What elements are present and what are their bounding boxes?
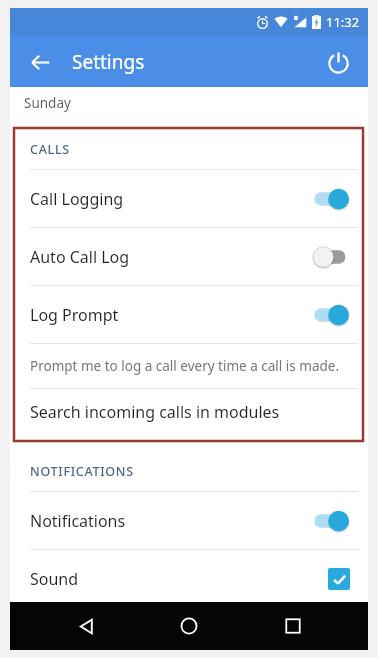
button[interactable]: Notifications xyxy=(10,492,368,549)
button[interactable]: Home xyxy=(161,602,217,650)
staticText: NOTIFICATIONS xyxy=(30,463,134,480)
staticText: Log Prompt xyxy=(30,304,312,326)
staticText: Sunday xyxy=(24,94,71,112)
staticText: Auto Call Log xyxy=(30,246,312,268)
staticText: Notifications xyxy=(30,510,312,532)
button[interactable]: Sunday xyxy=(10,87,368,119)
button[interactable]: Search incoming calls in modules xyxy=(10,389,368,435)
button[interactable]: Back xyxy=(18,40,62,84)
button[interactable]: Power xyxy=(316,40,360,84)
button[interactable]: Sound xyxy=(10,550,368,607)
button[interactable]: Prompt me to log a call every time a cal… xyxy=(10,344,368,388)
other: Sound checkbox xyxy=(328,568,350,590)
staticText: Settings xyxy=(72,49,145,75)
button[interactable]: Back xyxy=(58,602,114,650)
staticText: CALLS xyxy=(30,141,70,158)
staticText: Prompt me to log a call every time a cal… xyxy=(30,357,340,375)
button[interactable]: Auto Call Log xyxy=(10,228,368,285)
button[interactable]: Log Prompt xyxy=(10,286,368,343)
staticText: Search incoming calls in modules xyxy=(30,401,280,423)
staticText: 11:32 xyxy=(326,13,360,31)
button[interactable]: Recent apps xyxy=(265,602,321,650)
button[interactable]: Call Logging xyxy=(10,170,368,227)
staticText: Sound xyxy=(30,568,328,590)
staticText: Call Logging xyxy=(30,188,312,210)
